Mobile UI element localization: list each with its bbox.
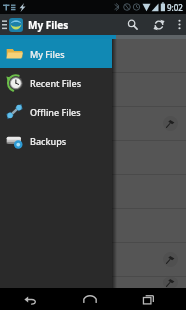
button[interactable]: Pin xyxy=(0,277,186,288)
button[interactable]: Pin xyxy=(163,116,178,131)
button[interactable]: Presentation.psd xyxy=(0,243,186,276)
button[interactable]: Pin xyxy=(163,277,178,288)
staticText xyxy=(31,50,178,61)
button[interactable]: Offline Files xyxy=(0,97,112,126)
button[interactable]: Annual Business.pdf xyxy=(0,107,186,140)
button[interactable] xyxy=(0,73,186,106)
button[interactable] xyxy=(0,141,186,174)
button[interactable]: Pin xyxy=(163,252,178,267)
staticText xyxy=(31,277,163,288)
button[interactable]: Backups xyxy=(0,126,112,155)
button[interactable]: Recent apps xyxy=(119,288,178,310)
button[interactable]: My Files xyxy=(0,39,112,68)
staticText: My Files xyxy=(30,48,65,60)
staticText: 9:02 xyxy=(167,2,183,13)
button[interactable] xyxy=(0,175,186,208)
button[interactable]: Search xyxy=(120,14,145,35)
button[interactable]: Home xyxy=(60,288,119,310)
staticText: Backups xyxy=(30,135,67,147)
button[interactable]: Refresh xyxy=(145,14,172,35)
staticText xyxy=(31,186,178,197)
staticText: Offline Files xyxy=(30,106,81,118)
staticText xyxy=(31,84,178,95)
staticText: Presentation.psd xyxy=(31,254,163,265)
button[interactable] xyxy=(0,209,186,242)
button[interactable]: Back xyxy=(0,288,60,310)
staticText: Recent Files xyxy=(30,77,82,89)
staticText: My Files xyxy=(28,18,69,32)
staticText xyxy=(31,152,178,163)
button[interactable]: Open navigation drawer xyxy=(0,14,7,35)
staticText: Annual Business.pdf xyxy=(31,118,163,129)
button[interactable]: More options xyxy=(172,14,186,35)
button[interactable]: Recent Files xyxy=(0,68,112,97)
button[interactable] xyxy=(0,39,186,72)
staticText xyxy=(31,220,178,231)
